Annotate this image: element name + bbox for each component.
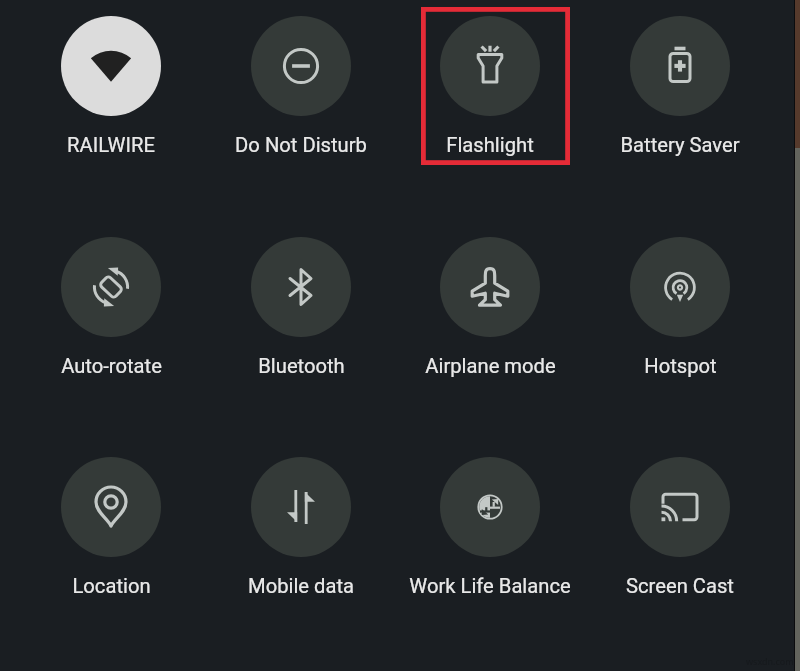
toggle[interactable]: Bluetooth [207, 237, 395, 389]
staticText: Airplane mode [425, 354, 556, 378]
staticText: Bluetooth [258, 354, 345, 378]
toggle[interactable]: Screen Cast [586, 457, 774, 609]
staticText: Work Life Balance [409, 574, 571, 598]
toggle[interactable]: Auto-rotate [17, 237, 205, 389]
toggle[interactable]: Hotspot [586, 237, 774, 389]
toggle[interactable]: Do Not Disturb [207, 16, 395, 168]
toggle[interactable]: Airplane mode [396, 237, 584, 389]
staticText: Flashlight [446, 133, 534, 157]
staticText: Auto-rotate [61, 354, 162, 378]
staticText: Screen Cast [626, 574, 734, 598]
staticText: Location [72, 574, 151, 598]
staticText: RAILWIRE [67, 133, 155, 157]
staticText: Battery Saver [620, 133, 740, 157]
staticText: Do Not Disturb [235, 133, 367, 157]
toggle[interactable]: Mobile data [207, 457, 395, 609]
toggle[interactable]: Flashlight [396, 16, 584, 168]
toggle[interactable]: Location [17, 457, 205, 609]
staticText: Hotspot [644, 354, 717, 378]
staticText: Mobile data [248, 574, 354, 598]
toggle[interactable]: Work Life Balance [396, 457, 584, 609]
toggle[interactable]: Battery Saver [586, 16, 774, 168]
toggle[interactable]: RAILWIRE [17, 16, 205, 168]
